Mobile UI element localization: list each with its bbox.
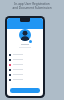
other: Profile photo [19,29,31,41]
button[interactable] [7,72,43,77]
button[interactable] [7,67,43,72]
button[interactable] [10,88,40,93]
button[interactable]: Change photo [29,40,32,43]
staticText: and Document Submission [12,6,52,10]
button[interactable] [7,57,43,62]
button[interactable] [7,52,43,57]
button[interactable] [7,62,43,67]
button[interactable] [7,77,43,82]
staticText: In-app User Registration [14,2,50,6]
